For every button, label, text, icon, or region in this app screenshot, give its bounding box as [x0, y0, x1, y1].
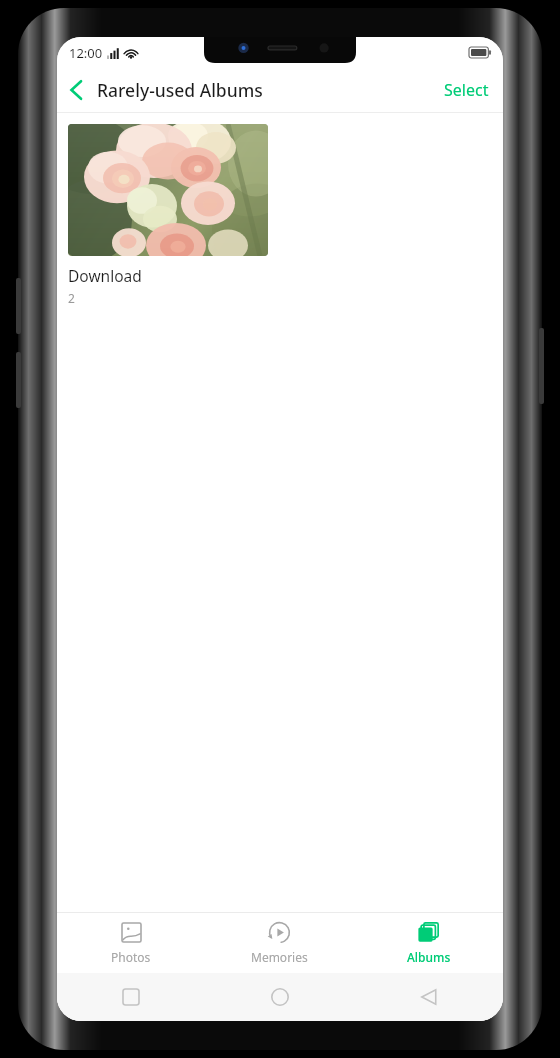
staticText: 12:00: [69, 44, 103, 62]
staticText: Photos: [111, 949, 151, 965]
button[interactable]: Memories: [205, 913, 354, 973]
staticText: Download: [68, 265, 142, 286]
button[interactable]: Back: [354, 973, 503, 1021]
button[interactable]: Recents: [57, 973, 205, 1021]
button[interactable]: Home: [205, 973, 354, 1021]
staticText: Rarely-used Albums: [97, 78, 263, 102]
staticText: Albums: [407, 949, 451, 965]
button[interactable]: Back: [57, 68, 95, 112]
button[interactable]: Select: [430, 68, 503, 112]
staticText: Memories: [251, 949, 308, 965]
button[interactable]: Albums: [354, 913, 503, 973]
staticText: Select: [444, 79, 489, 101]
staticText: 2: [68, 290, 75, 306]
button[interactable]: Photos: [57, 913, 205, 973]
button[interactable]: Download: [68, 124, 268, 306]
